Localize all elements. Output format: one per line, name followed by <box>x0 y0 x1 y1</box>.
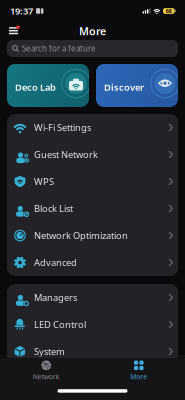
staticText: More <box>130 372 147 381</box>
button[interactable]: Discover <box>96 64 178 107</box>
button[interactable]: LED Control <box>7 311 178 338</box>
button[interactable]: Deco Lab <box>7 64 89 107</box>
button[interactable]: Search for a feature <box>0 40 185 57</box>
staticText: Wi-Fi Settings <box>34 121 91 134</box>
staticText: Discover <box>104 81 144 93</box>
button[interactable]: More <box>92 356 185 381</box>
staticText: Search for a feature <box>22 43 96 54</box>
staticText: LED Control <box>34 318 86 331</box>
button[interactable]: WPS <box>7 168 178 195</box>
button[interactable]: Block List <box>7 195 178 222</box>
staticText: Network Optimization <box>34 229 128 242</box>
staticText: 19:37 <box>10 5 33 17</box>
staticText: Guest Network <box>34 148 98 161</box>
staticText: Deco Lab <box>15 81 56 93</box>
staticText: Network <box>33 372 60 381</box>
staticText: Block List <box>34 202 73 215</box>
button[interactable]: Network <box>0 356 92 381</box>
button[interactable]: Menu <box>0 23 20 38</box>
staticText: More <box>79 24 106 38</box>
staticText: System <box>34 345 65 358</box>
button[interactable]: Advanced <box>7 249 178 276</box>
button[interactable]: Guest Network <box>7 141 178 168</box>
button[interactable]: Wi-Fi Settings <box>7 114 178 141</box>
button[interactable]: Network Optimization <box>7 222 178 249</box>
button[interactable]: System <box>7 338 178 365</box>
staticText: Advanced <box>34 256 77 269</box>
staticText: Managers <box>34 291 77 304</box>
button[interactable]: Managers <box>7 284 178 311</box>
staticText: 68 <box>166 7 172 15</box>
staticText: WPS <box>34 175 54 188</box>
